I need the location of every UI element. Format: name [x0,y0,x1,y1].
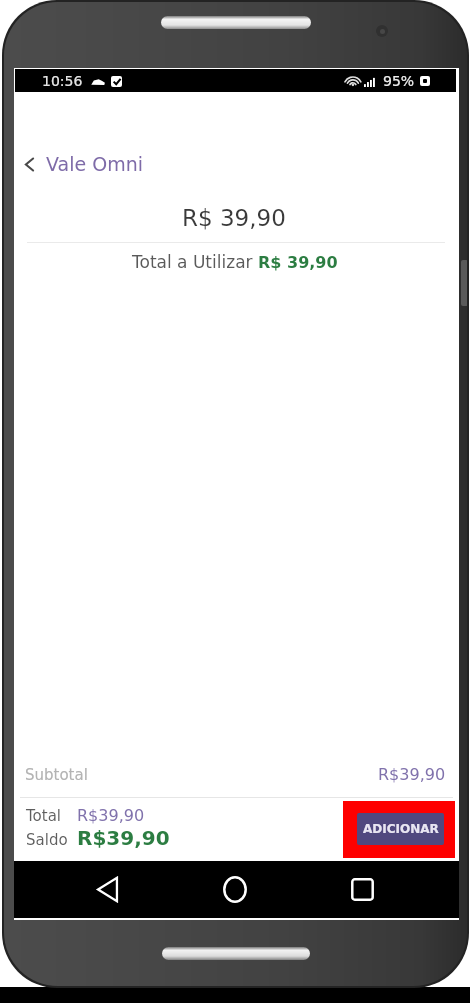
staticText: R$ 39,90 [258,253,338,272]
button[interactable]: Back [14,150,459,178]
other: Back [25,158,34,171]
staticText: Total [26,807,62,824]
button[interactable]: Back [67,861,147,918]
staticText: Vale Omni [46,153,143,175]
button[interactable]: Recent apps [322,861,402,918]
staticText: R$39,90 [378,765,446,784]
staticText: 95% [383,73,415,89]
staticText: ADICIONAR [363,822,439,836]
staticText: Subtotal [25,766,88,783]
button[interactable]: ADICIONAR [357,813,444,845]
staticText: R$39,90 [77,826,170,849]
staticText: R$ 39,90 [182,205,286,232]
staticText: Total a Utilizar [132,252,253,272]
staticText: Saldo [26,831,68,848]
staticText: 10:56 [42,73,83,89]
staticText: R$39,90 [77,806,145,825]
button[interactable]: Home [195,861,275,918]
